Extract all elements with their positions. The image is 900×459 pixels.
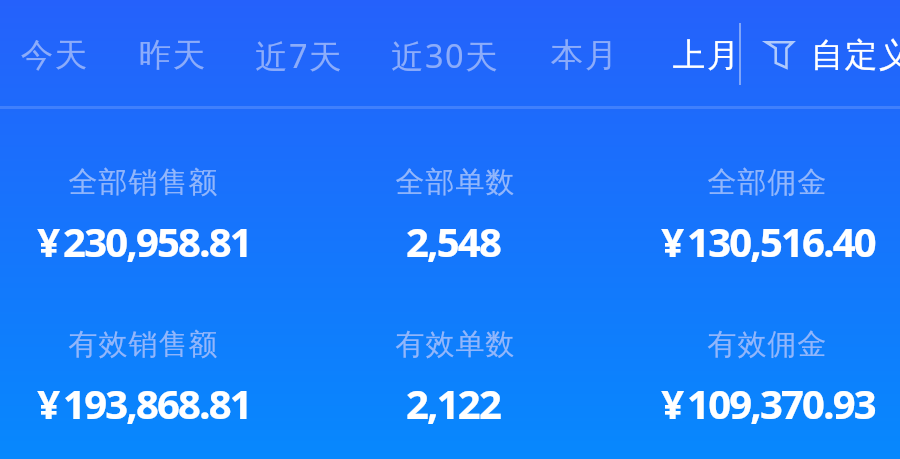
button[interactable]: 昨天 [126,2,218,108]
staticText: 有效销售额 [68,326,218,362]
staticText: ¥ 130,516.40 [661,214,875,268]
button[interactable]: 全部佣金 [614,164,900,268]
staticText: 本月 [550,35,618,76]
staticText: 2,548 [406,214,500,268]
staticText: ¥ 230,958.81 [37,214,251,268]
button[interactable]: 有效单数 [302,326,614,430]
staticText: 全部单数 [395,164,515,200]
button[interactable]: 全部销售额 [0,164,302,268]
button[interactable]: 有效销售额 [0,326,302,430]
button[interactable]: 本月 [538,2,630,108]
staticText: 有效单数 [395,326,515,362]
staticText: 自定义 [810,35,900,76]
staticText: 今天 [20,35,88,76]
button[interactable]: 全部单数 [302,164,614,268]
staticText: ¥ 109,370.93 [661,376,875,430]
staticText: 有效佣金 [707,326,827,362]
staticText: 全部销售额 [68,164,218,200]
button[interactable]: 今天 [8,2,100,108]
staticText: 昨天 [138,35,206,76]
staticText: 近30天 [391,33,500,77]
button[interactable]: 近7天 [243,2,356,108]
button[interactable]: 有效佣金 [614,326,900,430]
staticText: 2,122 [406,376,500,430]
staticText: 上月 [672,35,740,76]
button[interactable]: 上月 [660,2,752,108]
button[interactable]: 近30天 [379,2,512,108]
staticText: 全部佣金 [707,164,827,200]
staticText: 近7天 [255,33,344,77]
staticText: ¥ 193,868.81 [37,376,251,430]
button[interactable]: 自定义 custom date range [765,2,900,108]
